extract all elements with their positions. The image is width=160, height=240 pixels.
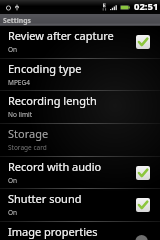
staticText: Settings [3, 16, 31, 25]
staticText: Storage [8, 126, 49, 141]
button[interactable]: Record with audio [0, 157, 160, 189]
staticText: Review after capture [8, 28, 114, 43]
staticText: Storage card [8, 143, 47, 152]
button[interactable]: Review after capture [0, 26, 160, 58]
staticText: On [8, 176, 18, 185]
button[interactable]: Image properties [0, 222, 160, 240]
button[interactable]: Toggle setting [136, 166, 150, 180]
staticText: On [8, 45, 18, 54]
staticText: 02:51 [134, 0, 159, 13]
staticText: Shutter sound [8, 191, 82, 206]
button[interactable]: Shutter sound [0, 189, 160, 221]
staticText: Image properties [8, 224, 98, 239]
button[interactable]: Encoding type [0, 59, 160, 91]
button[interactable]: Toggle setting [136, 35, 150, 49]
button[interactable]: Toggle setting [136, 198, 150, 212]
staticText: Recording length [8, 93, 97, 108]
button[interactable]: Storage [0, 124, 160, 156]
staticText: On [8, 208, 18, 217]
staticText: Record with audio [8, 159, 102, 174]
button[interactable]: Recording length [0, 91, 160, 123]
staticText: Encoding type [8, 61, 82, 76]
staticText: MPEG4 [8, 78, 30, 87]
staticText: No limit [8, 110, 33, 119]
